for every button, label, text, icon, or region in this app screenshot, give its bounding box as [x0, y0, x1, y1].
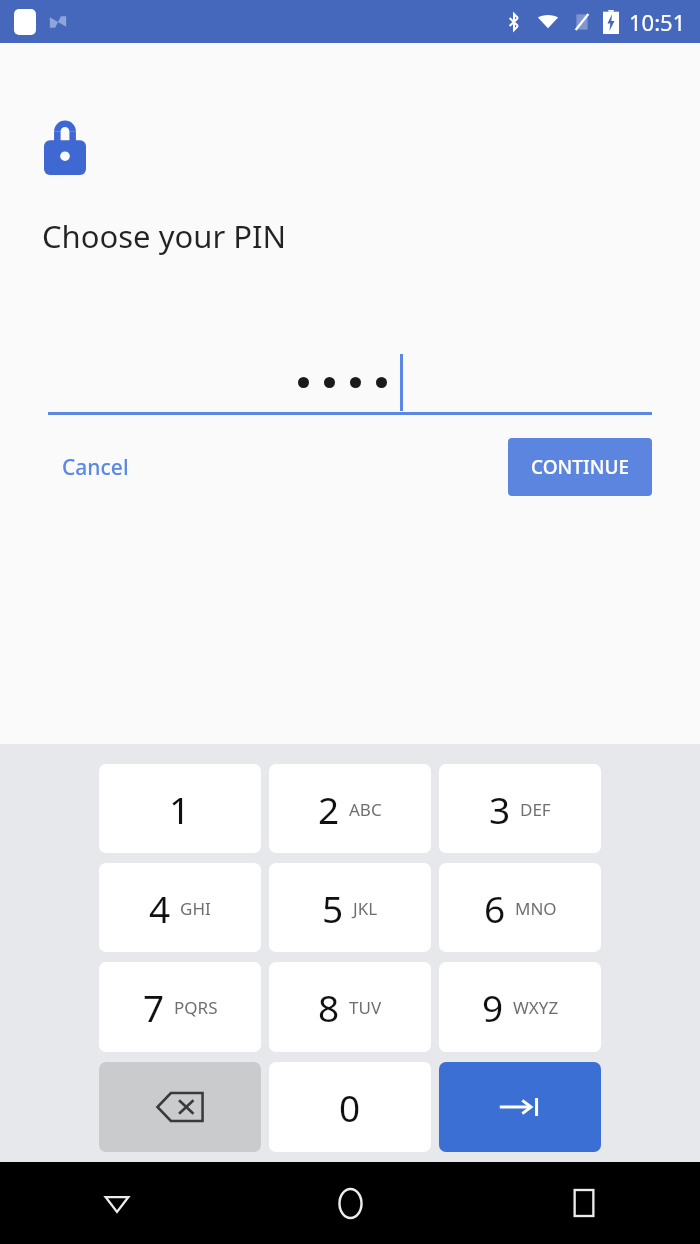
button[interactable]: Backspace [99, 1062, 261, 1152]
button[interactable]: 4 [99, 863, 261, 952]
button[interactable]: 9 [439, 962, 601, 1052]
button[interactable]: 5 [269, 863, 431, 952]
button[interactable]: Back [0, 1162, 234, 1244]
staticText: 1 [169, 784, 191, 834]
staticText: CONTINUE [531, 454, 630, 480]
staticText: 8 [318, 982, 340, 1032]
staticText: 6 [484, 883, 506, 933]
button[interactable]: CONTINUE [508, 438, 652, 496]
staticText: 10:51 [629, 7, 686, 37]
button[interactable]: Home [234, 1162, 467, 1244]
staticText: ABC [349, 798, 382, 821]
staticText: Choose your PIN [42, 215, 287, 257]
button[interactable]: 2 [269, 764, 431, 853]
staticText: 4 [149, 883, 171, 933]
button[interactable]: 8 [269, 962, 431, 1052]
staticText: 5 [322, 883, 344, 933]
staticText: DEF [520, 798, 551, 821]
staticText: TUV [349, 996, 382, 1019]
staticText: 0 [339, 1082, 361, 1132]
button[interactable]: Recents [467, 1162, 700, 1244]
button[interactable]: 6 [439, 863, 601, 952]
staticText: 7 [143, 982, 165, 1032]
staticText: PQRS [174, 996, 218, 1019]
button[interactable]: Next [439, 1062, 601, 1152]
staticText: 9 [482, 982, 504, 1032]
staticText: JKL [353, 897, 378, 920]
button[interactable]: Cancel [48, 444, 143, 491]
staticText: GHI [180, 897, 211, 920]
staticText: WXYZ [513, 996, 559, 1019]
button[interactable]: 7 [99, 962, 261, 1052]
button[interactable]: 3 [439, 764, 601, 853]
staticText: 3 [489, 784, 511, 834]
button[interactable]: 0 [269, 1062, 431, 1152]
button[interactable]: 1 [99, 764, 261, 853]
staticText: Cancel [62, 453, 129, 482]
staticText: 2 [318, 784, 340, 834]
button[interactable] [48, 349, 652, 415]
staticText: MNO [515, 897, 557, 920]
